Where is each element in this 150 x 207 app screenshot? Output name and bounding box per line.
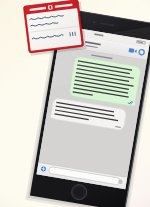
button[interactable]: Photo of phone showing SMS conversation (0, 0, 150, 207)
